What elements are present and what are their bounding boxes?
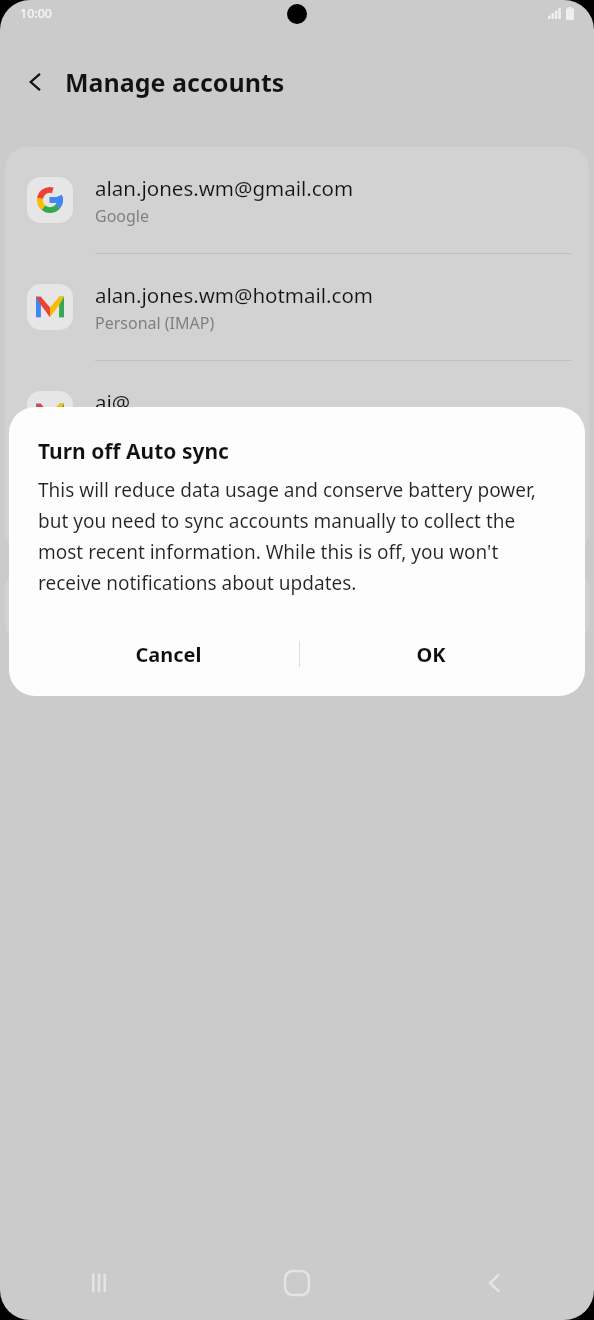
staticText: alan.jones.wm@gmail.com xyxy=(95,174,354,202)
staticText: Add account xyxy=(95,497,215,525)
staticText: alan.jones.wm@hotmail.com xyxy=(95,281,374,309)
staticText: Manage accounts xyxy=(65,65,285,99)
button[interactable]: Recents xyxy=(0,1246,198,1320)
button[interactable]: Add account xyxy=(5,468,589,554)
staticText: Turn off Auto sync xyxy=(38,437,229,466)
staticText: Personal (IMAP) xyxy=(95,312,215,334)
button[interactable]: Cancel xyxy=(38,626,299,682)
button[interactable]: Back xyxy=(14,60,58,104)
staticText: Google xyxy=(95,205,150,227)
staticText: OK xyxy=(416,641,446,668)
button[interactable]: OK xyxy=(300,626,561,682)
staticText: Cancel xyxy=(135,641,202,668)
staticText: This will reduce data usage and conserve… xyxy=(38,477,561,596)
button[interactable]: alan.jones.wm@hotmail.com xyxy=(5,254,589,361)
staticText: 10:00 xyxy=(20,5,53,22)
button[interactable]: Auto sync data xyxy=(5,568,589,644)
button[interactable]: Back xyxy=(396,1246,594,1320)
button[interactable]: alan.jones.wm@gmail.com xyxy=(5,147,589,254)
button[interactable]: aj@ xyxy=(5,361,589,468)
staticText: aj@ xyxy=(95,388,131,416)
staticText: Auto sync data xyxy=(33,592,511,620)
